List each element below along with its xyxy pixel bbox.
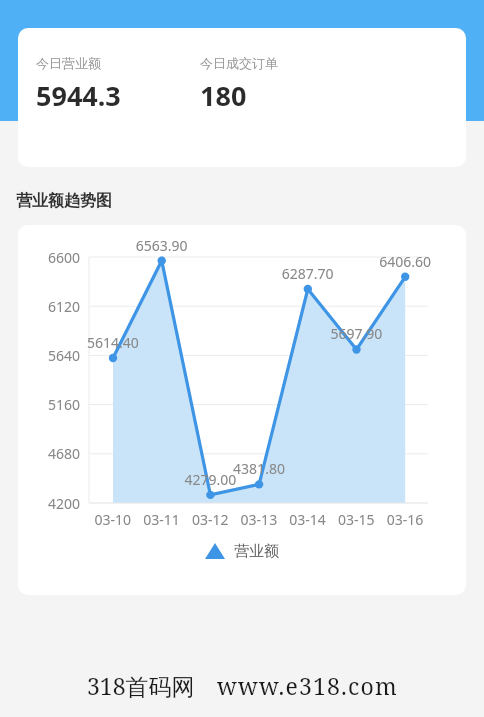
button[interactable]: 今日营业额	[18, 28, 466, 167]
staticText: 318首码网	[87, 670, 195, 701]
staticText: 今日成交订单	[200, 55, 278, 71]
staticText: 营业额趋势图	[16, 191, 112, 211]
button[interactable]	[18, 225, 466, 595]
staticText: 今日营业额	[36, 55, 101, 71]
staticText: www.e318.com	[217, 670, 398, 701]
staticText: 5944.3	[36, 77, 121, 114]
staticText: 180	[200, 77, 247, 114]
